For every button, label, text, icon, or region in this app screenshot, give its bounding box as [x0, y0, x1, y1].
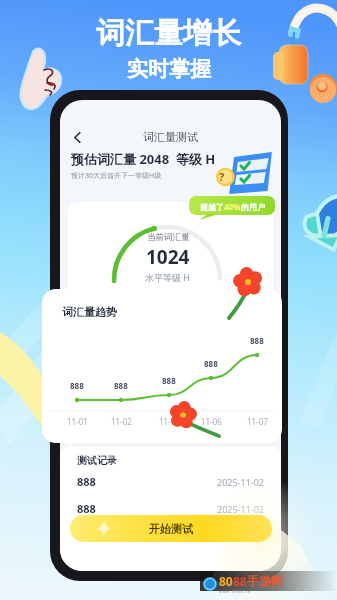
staticText: 水平等级 H: [145, 271, 191, 283]
staticText: 11-01: [67, 416, 88, 427]
staticText: 888: [204, 358, 218, 369]
staticText: 888: [114, 380, 128, 391]
staticText: 40%: [224, 201, 241, 212]
staticText: 实时掌握: [127, 56, 211, 82]
staticText: 11-07: [247, 416, 268, 427]
staticText: 2025-11-02: [217, 503, 264, 515]
staticText: 80: [219, 573, 233, 589]
staticText: w w w . 8 0 8 8 . c n: [219, 589, 251, 594]
staticText: 当前词汇量: [147, 232, 190, 243]
staticText: 11-02: [111, 416, 132, 427]
staticText: 888: [77, 501, 96, 516]
staticText: 词汇量测试: [143, 130, 198, 144]
staticText: 88: [233, 573, 247, 589]
button[interactable]: Back: [66, 126, 88, 148]
button[interactable]: 888: [77, 501, 264, 516]
staticText: 词汇量趋势: [62, 305, 117, 319]
staticText: 预计30天后晋升下一等级H级: [71, 171, 162, 181]
staticText: ?: [219, 169, 225, 184]
staticText: 的用户: [241, 202, 265, 212]
staticText: 11-03: [159, 416, 180, 427]
staticText: 预估词汇量 2048 等级 H: [71, 150, 216, 168]
staticText: 测试记录: [77, 454, 117, 467]
staticText: 超越了: [200, 202, 224, 212]
staticText: 11-06: [201, 416, 222, 427]
staticText: 888: [250, 335, 264, 346]
staticText: 1024: [146, 244, 190, 270]
button[interactable]: 888: [77, 474, 264, 489]
staticText: 888: [70, 380, 84, 391]
staticText: 888: [77, 474, 96, 489]
staticText: 2025-11-02: [217, 476, 264, 488]
button[interactable]: 开始测试: [70, 515, 272, 542]
staticText: 手游网: [247, 573, 283, 588]
staticText: 开始测试: [149, 522, 193, 536]
staticText: 888: [162, 375, 176, 386]
staticText: 词汇量增长: [96, 15, 241, 52]
